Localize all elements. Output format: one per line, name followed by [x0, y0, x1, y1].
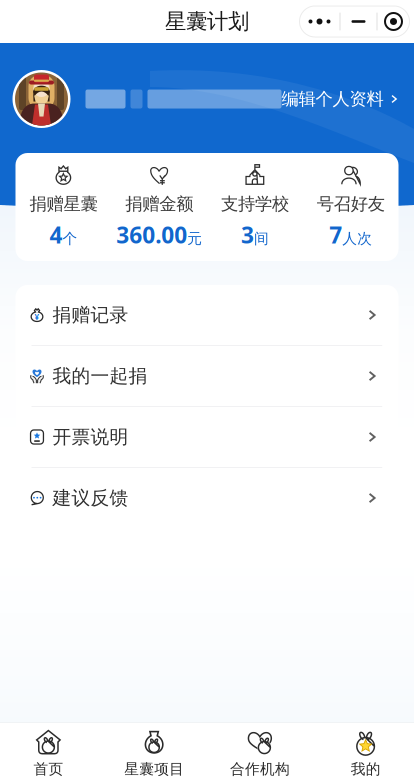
button[interactable]: 开票说明: [15, 407, 398, 467]
staticText: 合作机构: [230, 760, 290, 778]
staticText: 360.00: [116, 220, 187, 250]
button[interactable]: Minimize: [340, 6, 376, 36]
staticText: ¥: [34, 311, 39, 322]
staticText: 开票说明: [52, 425, 128, 448]
staticText: 间: [254, 229, 269, 247]
button[interactable]: Close: [377, 6, 409, 36]
button[interactable]: ¥: [15, 285, 398, 345]
staticText: 编辑个人资料: [281, 88, 383, 110]
staticText: 4: [49, 220, 62, 250]
staticText: 3: [241, 220, 254, 250]
staticText: 我的: [351, 760, 381, 778]
button[interactable]: 建议反馈: [15, 468, 398, 528]
staticText: 捐赠金额: [125, 193, 193, 215]
staticText: 首页: [33, 760, 63, 778]
staticText: 人次: [342, 229, 372, 247]
button[interactable]: 合作机构: [207, 723, 313, 780]
staticText: 捐赠星囊: [29, 193, 97, 215]
button[interactable]: More: [299, 6, 339, 36]
staticText: 支持学校: [221, 193, 289, 215]
staticText: 我的一起捐: [52, 364, 147, 387]
staticText: 星囊项目: [124, 760, 184, 778]
staticText: 号召好友: [317, 193, 385, 215]
staticText: 星囊计划: [165, 8, 249, 35]
button[interactable]: 我的: [313, 723, 414, 780]
button[interactable]: 星囊项目: [101, 723, 207, 780]
staticText: 个: [62, 229, 77, 247]
staticText: 建议反馈: [52, 486, 128, 509]
button[interactable]: 首页: [0, 723, 101, 780]
staticText: 7: [329, 220, 342, 250]
staticText: 元: [187, 229, 202, 247]
button[interactable]: 编辑个人资料: [281, 88, 398, 110]
button[interactable]: 我的一起捐: [15, 346, 398, 406]
staticText: 捐赠记录: [52, 303, 128, 326]
